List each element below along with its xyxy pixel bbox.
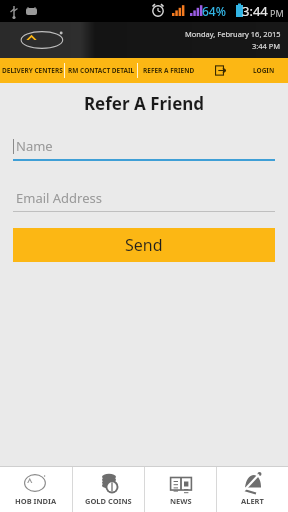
staticText: Refer A Friend bbox=[0, 92, 288, 115]
staticText: Name bbox=[16, 137, 53, 155]
staticText: LOGIN bbox=[253, 66, 275, 75]
button[interactable]: Email Address bbox=[13, 189, 275, 212]
button[interactable]: DELIVERY CENTERS bbox=[0, 58, 64, 83]
staticText: ALERT bbox=[241, 496, 264, 506]
button[interactable]: Name bbox=[13, 137, 275, 161]
staticText: DELIVERY CENTERS bbox=[2, 66, 63, 75]
staticText: 64% bbox=[202, 3, 226, 19]
staticText: Email Address bbox=[16, 189, 102, 207]
button[interactable]: HOB home bbox=[18, 29, 70, 51]
button[interactable]: NEWS bbox=[145, 467, 216, 512]
staticText: 3:44 PM bbox=[252, 41, 281, 51]
staticText: RM CONTACT DETAIL bbox=[68, 66, 135, 75]
staticText: 3:44 bbox=[242, 2, 268, 20]
button[interactable]: GOLD COINS bbox=[73, 467, 144, 512]
button[interactable]: ALERT bbox=[217, 467, 288, 512]
button[interactable]: REFER A FRIEND bbox=[138, 58, 200, 83]
staticText: REFER A FRIEND bbox=[143, 66, 195, 75]
staticText: Send bbox=[125, 234, 163, 256]
staticText: HOB INDIA bbox=[15, 496, 57, 506]
button[interactable]: HOB INDIA bbox=[0, 467, 72, 512]
button[interactable]: LOGIN bbox=[240, 58, 288, 83]
staticText: NEWS bbox=[170, 496, 192, 506]
staticText: Monday, February 16, 2015 bbox=[185, 29, 281, 39]
button[interactable]: RM CONTACT DETAIL bbox=[65, 58, 137, 83]
staticText: GOLD COINS bbox=[85, 496, 132, 506]
button[interactable]: Send bbox=[13, 228, 275, 262]
staticText: PM bbox=[270, 7, 284, 19]
button[interactable]: Switch account bbox=[200, 58, 240, 83]
